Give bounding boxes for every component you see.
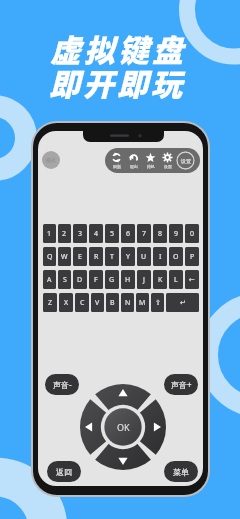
- staticText: N: [125, 298, 131, 308]
- staticText: J: [143, 275, 145, 285]
- button[interactable]: X: [59, 293, 73, 312]
- staticText: V: [95, 298, 100, 308]
- staticText: I: [159, 252, 162, 262]
- button[interactable]: 待机: [142, 152, 159, 169]
- button[interactable]: A: [43, 270, 56, 289]
- staticText: 刷新: [113, 164, 121, 169]
- staticText: G: [109, 275, 115, 285]
- button[interactable]: B: [106, 293, 119, 312]
- staticText: Y: [126, 252, 130, 262]
- button[interactable]: 刷新: [108, 152, 125, 169]
- staticText: P: [190, 252, 195, 262]
- button[interactable]: Y: [121, 247, 135, 266]
- button[interactable]: 设置: [159, 152, 176, 169]
- button[interactable]: V: [91, 293, 104, 312]
- button[interactable]: 模式: [42, 151, 60, 169]
- staticText: T: [110, 252, 114, 262]
- staticText: S: [63, 275, 67, 285]
- staticText: 即开即玩: [49, 60, 185, 105]
- button[interactable]: Direction pad: [80, 384, 166, 470]
- button[interactable]: 7: [137, 224, 151, 243]
- staticText: 5: [110, 229, 115, 239]
- staticText: 设置: [164, 164, 172, 169]
- staticText: 声音-: [53, 379, 72, 390]
- staticText: H: [125, 275, 131, 285]
- button[interactable]: F: [89, 270, 103, 289]
- button[interactable]: Z: [43, 293, 57, 312]
- button[interactable]: E: [73, 247, 87, 266]
- button[interactable]: S: [58, 270, 71, 289]
- staticText: 返回: [56, 467, 72, 477]
- button[interactable]: 5: [105, 224, 119, 243]
- staticText: 待机: [147, 164, 155, 169]
- staticText: 7: [142, 229, 147, 239]
- staticText: W: [61, 252, 68, 262]
- button[interactable]: P: [185, 247, 199, 266]
- staticText: 虚拟键盘: [50, 26, 186, 71]
- staticText: ↵: [180, 299, 186, 307]
- staticText: OK: [117, 421, 130, 433]
- button[interactable]: 设置: [176, 151, 195, 170]
- staticText: O: [173, 252, 179, 262]
- staticText: C: [80, 298, 85, 308]
- button[interactable]: 2: [58, 224, 71, 243]
- button[interactable]: 1: [43, 224, 56, 243]
- button[interactable]: C: [75, 293, 89, 312]
- staticText: 声音+: [171, 379, 192, 390]
- button[interactable]: D: [73, 270, 87, 289]
- staticText: L: [174, 275, 178, 285]
- staticText: 1: [47, 229, 52, 239]
- staticText: 8: [158, 229, 163, 239]
- staticText: F: [94, 275, 98, 285]
- button[interactable]: ↵: [166, 293, 199, 312]
- staticText: 4: [94, 229, 99, 239]
- button[interactable]: 退出: [125, 152, 142, 169]
- staticText: 0: [190, 229, 195, 239]
- staticText: R: [94, 252, 99, 262]
- staticText: M: [139, 298, 146, 308]
- button[interactable]: W: [58, 247, 71, 266]
- button[interactable]: G: [105, 270, 119, 289]
- staticText: D: [77, 275, 83, 285]
- staticText: 9: [174, 229, 179, 239]
- button[interactable]: 声音+: [164, 374, 198, 395]
- button[interactable]: 4: [89, 224, 103, 243]
- staticText: E: [78, 252, 82, 262]
- button[interactable]: 0: [185, 224, 199, 243]
- staticText: Q: [47, 252, 53, 262]
- staticText: 退出: [130, 164, 138, 169]
- button[interactable]: Q: [43, 247, 56, 266]
- button[interactable]: L: [169, 270, 183, 289]
- button[interactable]: 3: [73, 224, 87, 243]
- button[interactable]: 返回: [47, 461, 81, 482]
- button[interactable]: ←: [185, 270, 199, 289]
- staticText: K: [158, 275, 163, 285]
- button[interactable]: 8: [153, 224, 167, 243]
- button[interactable]: N: [121, 293, 134, 312]
- staticText: 6: [126, 229, 131, 239]
- button[interactable]: O: [169, 247, 183, 266]
- staticText: B: [110, 298, 115, 308]
- button[interactable]: I: [153, 247, 167, 266]
- staticText: 3: [78, 229, 83, 239]
- button[interactable]: T: [105, 247, 119, 266]
- staticText: 模式: [46, 157, 56, 163]
- button[interactable]: 菜单: [164, 461, 198, 482]
- staticText: ←: [189, 276, 195, 284]
- button[interactable]: ⇧: [151, 293, 164, 312]
- button[interactable]: K: [153, 270, 167, 289]
- button[interactable]: 6: [121, 224, 135, 243]
- staticText: 设置: [181, 158, 191, 164]
- button[interactable]: 声音-: [45, 374, 79, 395]
- button[interactable]: R: [89, 247, 103, 266]
- staticText: 菜单: [173, 467, 189, 477]
- staticText: U: [141, 252, 147, 262]
- button[interactable]: U: [137, 247, 151, 266]
- staticText: A: [47, 275, 52, 285]
- button[interactable]: J: [137, 270, 151, 289]
- staticText: ⇧: [155, 299, 161, 307]
- button[interactable]: H: [121, 270, 135, 289]
- staticText: 2: [62, 229, 67, 239]
- button[interactable]: M: [136, 293, 149, 312]
- button[interactable]: 9: [169, 224, 183, 243]
